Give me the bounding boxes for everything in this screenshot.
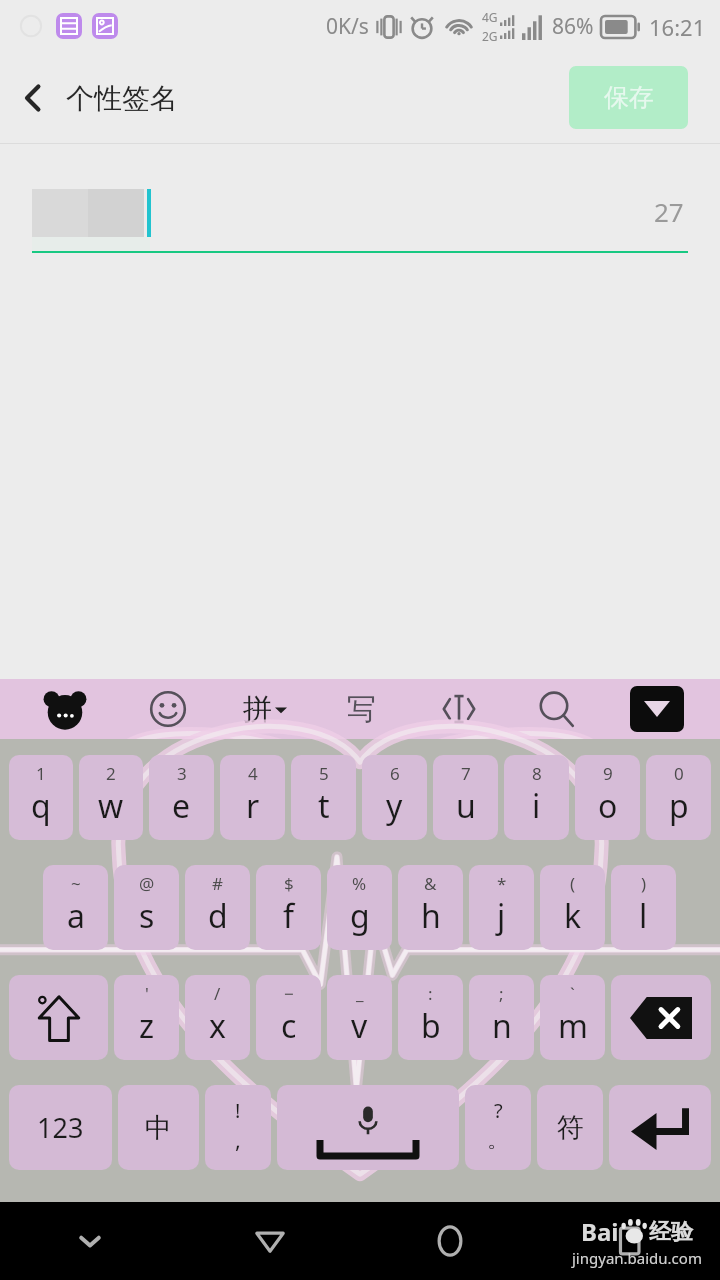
staticText: ~	[71, 872, 81, 895]
button[interactable]: Numbers	[9, 1085, 112, 1170]
button[interactable]: −	[256, 975, 321, 1060]
staticText: q	[31, 784, 51, 828]
button[interactable]: 5	[291, 755, 356, 840]
staticText: c	[281, 1004, 297, 1048]
staticText: x	[209, 1004, 226, 1048]
staticText: /	[214, 982, 221, 1005]
staticText: (	[570, 872, 576, 895]
button[interactable]: ;	[469, 975, 534, 1060]
staticText: #	[212, 872, 223, 895]
button[interactable]: `	[540, 975, 605, 1060]
button[interactable]: (	[540, 865, 605, 950]
button[interactable]: :	[398, 975, 463, 1060]
staticText: 1	[36, 762, 46, 785]
staticText: !	[235, 1097, 241, 1124]
staticText: 中	[145, 1111, 172, 1145]
button[interactable]: Chinese	[118, 1085, 199, 1170]
button[interactable]: *	[469, 865, 534, 950]
button[interactable]: )	[611, 865, 676, 950]
staticText: 6	[390, 762, 400, 785]
staticText: 保存	[604, 82, 654, 113]
staticText: ?	[494, 1097, 503, 1124]
staticText: 个性签名	[66, 81, 178, 116]
button[interactable]: Pinyin mode	[216, 679, 313, 739]
button[interactable]: Period	[465, 1085, 531, 1170]
staticText: s	[139, 894, 155, 938]
button[interactable]: Delete	[611, 975, 711, 1060]
staticText: o	[598, 784, 618, 828]
staticText: d	[208, 894, 228, 938]
button[interactable]: Shift	[9, 975, 108, 1060]
staticText: a	[67, 894, 85, 938]
staticText: 123	[37, 1109, 84, 1146]
button[interactable]: 2	[79, 755, 143, 840]
button[interactable]: Comma	[205, 1085, 271, 1170]
button[interactable]: Handwriting	[313, 679, 410, 739]
staticText: v	[351, 1004, 368, 1048]
button[interactable]: 6	[362, 755, 427, 840]
button[interactable]: '	[114, 975, 179, 1060]
button[interactable]: Hide keyboard	[604, 679, 710, 739]
staticText: Bai	[581, 1215, 619, 1248]
staticText: 0K/s	[326, 12, 369, 41]
button[interactable]: &	[398, 865, 463, 950]
button[interactable]: Hide keyboard	[0, 1202, 180, 1280]
button[interactable]: Symbols	[537, 1085, 603, 1170]
button[interactable]: 9	[575, 755, 640, 840]
staticText: 符	[557, 1111, 584, 1145]
staticText: 2G	[482, 28, 498, 44]
staticText: `	[570, 982, 575, 1005]
staticText: f	[283, 894, 295, 938]
staticText: b	[421, 1004, 441, 1048]
button[interactable]: Emoji	[120, 679, 216, 739]
button[interactable]: /	[185, 975, 250, 1060]
staticText: 经验	[649, 1218, 693, 1246]
staticText: n	[492, 1004, 512, 1048]
button[interactable]: 3	[149, 755, 214, 840]
button[interactable]: _	[327, 975, 392, 1060]
staticText: _	[356, 982, 364, 1005]
staticText: 拼	[243, 691, 272, 728]
staticText: )	[641, 872, 647, 895]
staticText: m	[558, 1004, 588, 1048]
button[interactable]: $	[256, 865, 321, 950]
staticText: 3	[177, 762, 187, 785]
staticText: 8	[532, 762, 542, 785]
staticText: 9	[603, 762, 613, 785]
staticText: :	[428, 982, 433, 1005]
staticText: j	[497, 894, 506, 938]
button[interactable]: 1	[9, 755, 73, 840]
staticText: 4G	[482, 9, 498, 25]
staticText: g	[350, 894, 370, 938]
staticText: ;	[499, 982, 504, 1005]
staticText: 7	[461, 762, 471, 785]
staticText: t	[318, 784, 330, 828]
button[interactable]: Enter	[609, 1085, 711, 1170]
button[interactable]: Recent apps	[540, 1202, 720, 1280]
button[interactable]: 8	[504, 755, 569, 840]
button[interactable]: Home	[360, 1202, 540, 1280]
staticText: 。	[487, 1126, 509, 1154]
button[interactable]: Move cursor	[410, 679, 507, 739]
staticText: 0	[674, 762, 684, 785]
button[interactable]: #	[185, 865, 250, 950]
staticText: 写	[347, 691, 376, 728]
staticText: 4	[248, 762, 258, 785]
button[interactable]: Space	[277, 1085, 459, 1170]
button[interactable]: 0	[646, 755, 711, 840]
button[interactable]: Back	[180, 1202, 360, 1280]
button[interactable]: 7	[433, 755, 498, 840]
button[interactable]: Back	[0, 65, 66, 131]
staticText: p	[669, 784, 689, 828]
button[interactable]: 保存	[569, 66, 688, 129]
button[interactable]: Search	[507, 679, 604, 739]
staticText: u	[456, 784, 476, 828]
staticText: y	[386, 784, 403, 828]
button[interactable]: @	[114, 865, 179, 950]
button[interactable]: ~	[43, 865, 108, 950]
button[interactable]: Baidu input	[10, 679, 120, 739]
button[interactable]: 4	[220, 755, 285, 840]
staticText: r	[246, 784, 260, 828]
button[interactable]: %	[327, 865, 392, 950]
staticText: z	[139, 1004, 155, 1048]
